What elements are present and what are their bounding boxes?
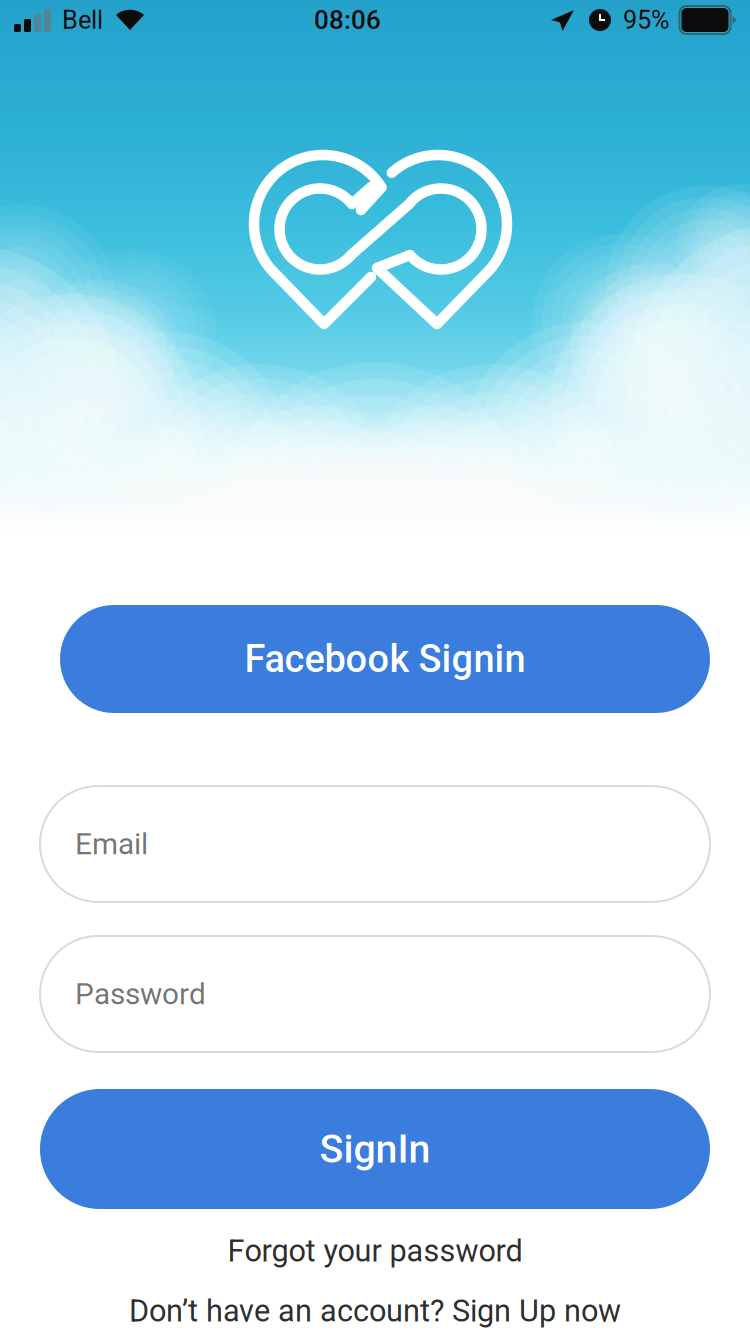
staticText: Email (75, 827, 148, 861)
button[interactable]: SignIn (40, 1089, 710, 1209)
staticText: Password (75, 977, 206, 1011)
button[interactable]: Forgot your password (0, 1228, 750, 1274)
button[interactable]: Facebook Signin (60, 605, 710, 713)
button[interactable]: Don’t have an account? Sign Up now (0, 1288, 750, 1334)
staticText: Bell (62, 5, 103, 35)
staticText: Facebook Signin (244, 637, 525, 681)
staticText: SignIn (319, 1126, 430, 1172)
staticText: 08:06 (314, 5, 381, 35)
staticText: Forgot your password (227, 1233, 522, 1269)
staticText: 95% (623, 5, 670, 35)
staticText: Don’t have an account? Sign Up now (129, 1293, 621, 1329)
